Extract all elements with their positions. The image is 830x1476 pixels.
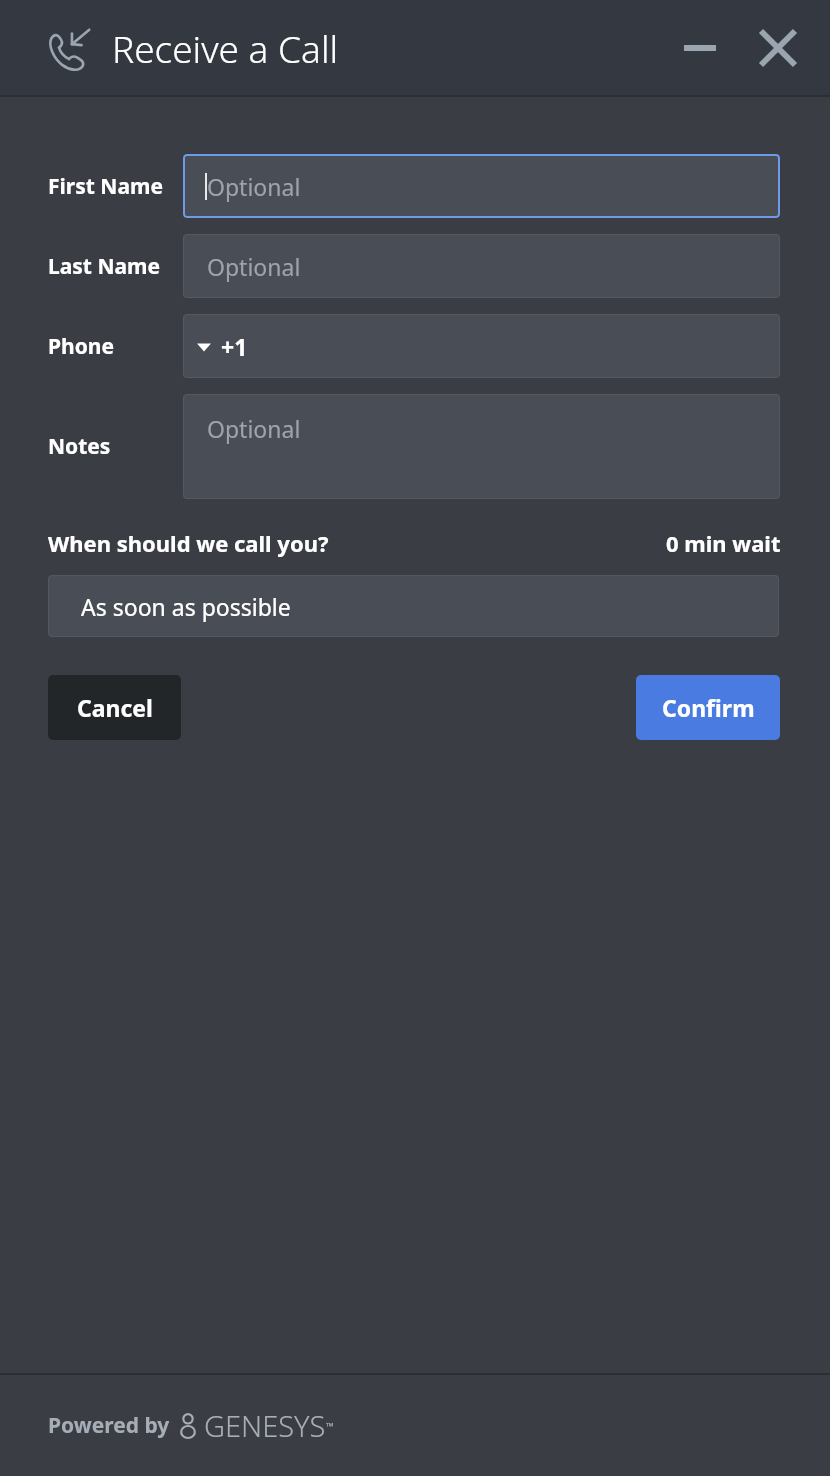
button[interactable]: Optional (183, 394, 780, 499)
staticText: GENESYS (204, 1406, 326, 1445)
staticText: ™ (326, 1419, 334, 1433)
staticText: As soon as possible (81, 591, 291, 622)
staticText: +1 (221, 331, 248, 362)
button[interactable]: +1 (183, 314, 780, 378)
button[interactable]: Minimize (676, 24, 724, 72)
button[interactable]: Optional (183, 234, 780, 298)
staticText: Last Name (48, 252, 161, 281)
button[interactable]: Cancel (48, 675, 181, 740)
staticText: Receive a Call (112, 23, 339, 73)
staticText: Optional (207, 413, 301, 444)
staticText: 0 min wait (666, 528, 781, 558)
staticText: Optional (207, 171, 301, 202)
staticText: First Name (48, 172, 163, 201)
staticText: Confirm (662, 692, 755, 723)
staticText: Notes (48, 432, 111, 461)
staticText: Cancel (77, 692, 153, 723)
staticText: When should we call you? (48, 528, 329, 558)
staticText: Optional (207, 251, 301, 282)
button[interactable]: Optional (183, 154, 780, 218)
button[interactable]: As soon as possible (48, 575, 779, 637)
button[interactable]: Close (750, 20, 806, 76)
button[interactable]: Confirm (636, 675, 780, 740)
staticText: Phone (48, 332, 115, 361)
staticText: Powered by (48, 1411, 170, 1440)
